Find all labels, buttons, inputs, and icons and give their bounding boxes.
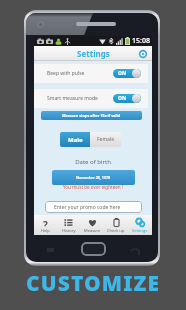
button[interactable]: History bbox=[57, 215, 80, 235]
staticText: 15:08 bbox=[132, 36, 150, 46]
button[interactable]: Refresh bbox=[138, 49, 148, 59]
staticText: ? bbox=[43, 218, 48, 227]
staticText: Check up bbox=[107, 228, 125, 233]
button[interactable]: Check up bbox=[104, 215, 128, 235]
button[interactable]: Enter your promo code here bbox=[45, 201, 142, 213]
staticText: Beep with pulse bbox=[47, 70, 85, 77]
staticText: Measure stops after 15s if valid bbox=[62, 113, 121, 118]
staticText: History bbox=[62, 228, 76, 233]
button[interactable]: Beep with pulse bbox=[34, 64, 148, 83]
staticText: Settings bbox=[132, 228, 148, 233]
staticText: ON bbox=[118, 95, 127, 102]
staticText: Date of birth bbox=[34, 158, 152, 166]
button[interactable]: Male bbox=[60, 132, 90, 147]
button[interactable]: Measure bbox=[80, 215, 104, 235]
staticText: Enter your promo code here bbox=[54, 204, 121, 211]
button[interactable]: ? bbox=[34, 215, 57, 235]
button[interactable]: Settings bbox=[128, 215, 152, 235]
staticText: Help bbox=[41, 228, 50, 233]
staticText: Male bbox=[68, 136, 83, 144]
staticText: Settings bbox=[77, 48, 110, 59]
button[interactable]: Female bbox=[90, 132, 121, 147]
staticText: November 28, 1978 bbox=[76, 175, 111, 180]
staticText: CUSTOMIZE bbox=[26, 269, 161, 298]
staticText: You must be over eighteen ! bbox=[34, 184, 152, 190]
staticText: Female bbox=[97, 136, 115, 143]
button[interactable]: November 28, 1978 bbox=[52, 170, 135, 185]
staticText: ON bbox=[118, 70, 127, 77]
button[interactable]: Smart measure mode bbox=[34, 89, 148, 108]
button[interactable]: Measure stops after 15s if valid bbox=[41, 111, 142, 120]
staticText: Measure bbox=[84, 228, 101, 233]
staticText: Smart measure mode bbox=[47, 95, 98, 102]
